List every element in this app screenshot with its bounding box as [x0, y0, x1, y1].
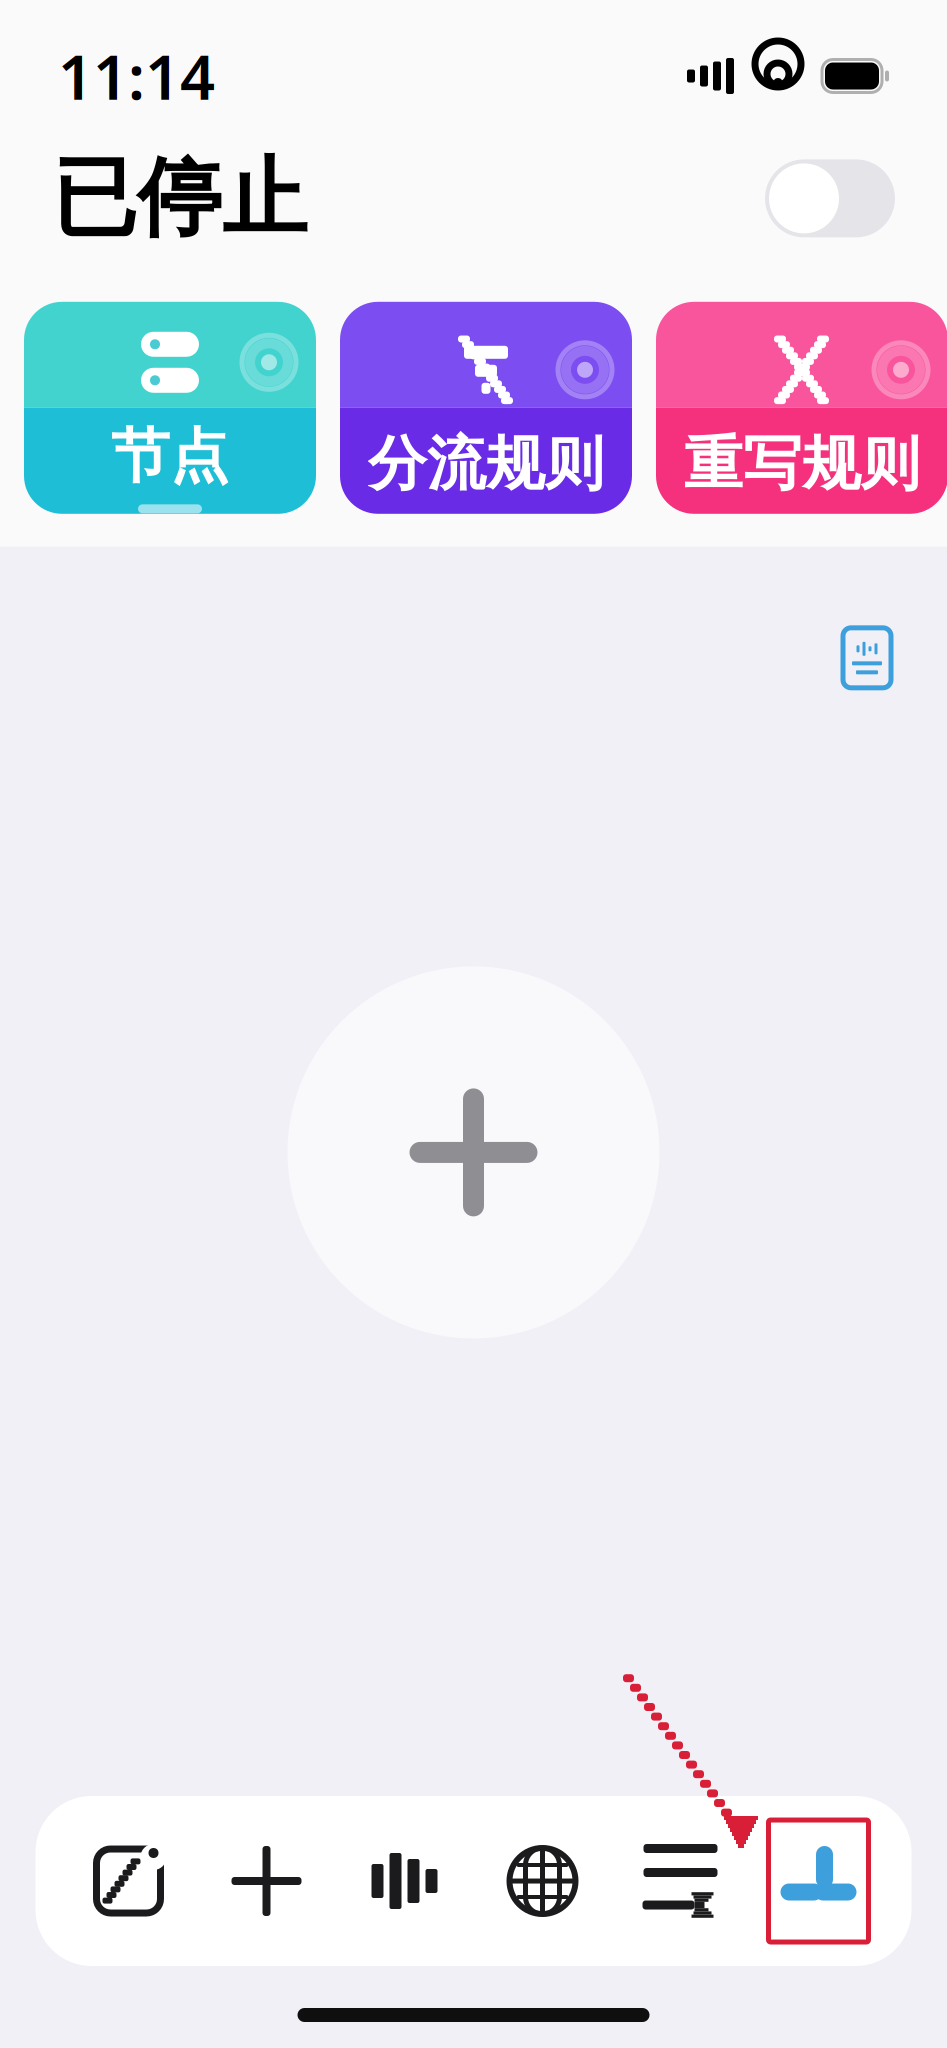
staticText: 节点	[111, 420, 229, 492]
button[interactable]: 节点	[24, 302, 316, 514]
button[interactable]: Dashboard	[749, 1811, 887, 1951]
button[interactable]: Add profile	[287, 966, 659, 1338]
button[interactable]: Add	[197, 1811, 335, 1951]
button[interactable]: 重写规则	[656, 302, 947, 514]
button[interactable]: 分流规则	[340, 302, 632, 514]
staticText: 已停止	[52, 146, 307, 251]
button[interactable]: Traffic report	[837, 623, 897, 693]
staticText: 重写规则	[684, 428, 920, 500]
button[interactable]: Toggle proxy	[765, 159, 895, 237]
button[interactable]: Compose	[59, 1811, 197, 1951]
button[interactable]: Network	[473, 1811, 611, 1951]
button[interactable]: Requests	[611, 1811, 749, 1951]
button[interactable]: Statistics	[335, 1811, 473, 1951]
staticText: 分流规则	[368, 428, 604, 500]
staticText: 11:14	[58, 35, 215, 117]
